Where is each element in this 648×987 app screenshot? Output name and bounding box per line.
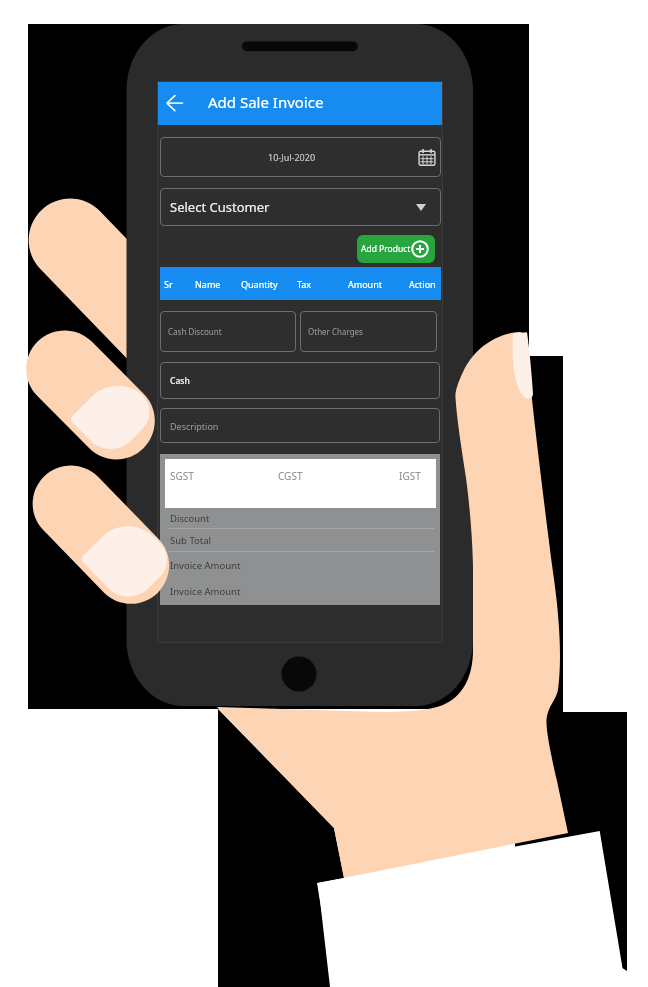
button[interactable]: Cash	[160, 362, 440, 399]
staticText: Invoice Amount	[170, 585, 241, 598]
staticText: Add Sale Invoice	[208, 92, 324, 112]
button[interactable]: Invoice Amount	[160, 552, 440, 578]
button[interactable]: Cash Discount	[160, 311, 296, 352]
button[interactable]: Sub Total	[160, 528, 440, 552]
button[interactable]: Back	[159, 89, 191, 117]
staticText: Add Product	[361, 243, 411, 255]
staticText: Cash	[170, 375, 190, 387]
button[interactable]: Description	[160, 408, 440, 443]
staticText: Amount	[348, 278, 382, 290]
staticText: Select Customer	[170, 198, 270, 216]
button[interactable]: 10-Jul-2020	[160, 137, 441, 177]
staticText: 10-Jul-2020	[268, 151, 316, 163]
staticText: Invoice Amount	[170, 559, 241, 572]
staticText: IGST	[399, 469, 421, 483]
staticText: SGST	[170, 469, 194, 483]
staticText: Description	[170, 420, 219, 432]
staticText: Cash Discount	[168, 326, 222, 337]
staticText: CGST	[278, 469, 303, 483]
button[interactable]: Add Product	[357, 235, 435, 263]
staticText: Discount	[170, 512, 210, 525]
button[interactable]: Discount	[160, 508, 440, 529]
staticText: Sub Total	[170, 534, 211, 547]
button[interactable]: Back	[157, 81, 443, 125]
button[interactable]: Sr	[160, 267, 441, 300]
staticText: Sr	[164, 278, 173, 290]
button[interactable]: Select Customer	[160, 188, 441, 226]
staticText: Name	[195, 278, 221, 290]
button[interactable]: Invoice Amount	[160, 578, 440, 605]
staticText: Action	[409, 278, 436, 290]
staticText: Other Charges	[308, 326, 363, 337]
staticText: Tax	[297, 278, 312, 290]
staticText: Quantity	[241, 278, 278, 290]
button[interactable]: Other Charges	[300, 311, 437, 352]
